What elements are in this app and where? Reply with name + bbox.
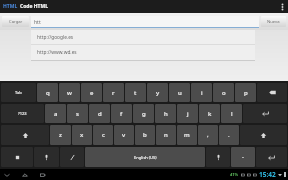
button[interactable]: English (US) [85,147,205,167]
staticText: i [201,89,203,97]
button[interactable]: . [219,125,239,145]
button[interactable]: s [67,104,88,123]
button[interactable]: x [72,125,92,145]
button[interactable]: b [135,125,155,145]
button[interactable]: n [156,125,176,145]
staticText: ?123 [18,111,27,116]
staticText: b [143,131,147,139]
button[interactable]: Backspace [257,83,287,102]
staticText: s [76,110,79,118]
button[interactable]: d [89,104,110,123]
button[interactable]: Shift [1,125,49,145]
button[interactable]: Enter [243,104,287,123]
staticText: n [164,131,168,139]
button[interactable]: Symbols [60,147,84,167]
button[interactable]: u [169,83,190,102]
button[interactable]: Home [20,170,30,180]
staticText: o [222,89,226,97]
button[interactable]: v [114,125,134,145]
button[interactable]: Tab [1,83,36,102]
button[interactable]: t [125,83,146,102]
button[interactable]: a [45,104,66,123]
button[interactable]: Recent apps [38,170,48,180]
button[interactable]: htt [31,16,259,28]
staticText: y [156,89,160,97]
button[interactable]: e [81,83,102,102]
button[interactable]: l [221,104,242,123]
staticText: e [90,89,94,97]
button[interactable]: g [133,104,154,123]
staticText: - [242,153,244,161]
staticText: , [207,131,209,139]
button[interactable]: m [177,125,197,145]
button[interactable]: Back [2,170,12,180]
staticText: v [122,131,126,139]
button[interactable]: q [37,83,58,102]
button[interactable]: r [103,83,124,102]
staticText: . [228,131,230,139]
button[interactable]: c [93,125,113,145]
staticText: c [102,131,105,139]
staticText: HTML [3,3,18,10]
button[interactable]: i [191,83,212,102]
staticText: q [46,89,50,97]
button[interactable]: h [155,104,176,123]
button[interactable]: y [147,83,168,102]
staticText: u [178,89,182,97]
button[interactable]: Next field [256,147,287,167]
staticText: http://www.wd.es [37,49,77,56]
button[interactable]: Voice input [34,147,59,167]
staticText: x [80,131,84,139]
button[interactable]: Voice [206,147,230,167]
button[interactable]: Shift [240,125,287,145]
staticText: j [187,110,189,118]
staticText: f [120,110,123,118]
button[interactable]: - [231,147,255,167]
staticText: l [231,110,233,118]
button[interactable]: p [235,83,256,102]
button[interactable]: o [213,83,234,102]
staticText: z [59,131,62,139]
button[interactable]: http://www.wd.es [31,45,255,59]
staticText: Code HTML [20,3,49,10]
button[interactable]: http://google.es [31,30,255,44]
button[interactable]: Nueva [261,16,286,27]
staticText: Cargar [9,19,23,25]
staticText: d [98,110,102,118]
button[interactable]: , [198,125,218,145]
staticText: Tab [15,90,22,95]
button[interactable]: ?123 [1,104,44,123]
staticText: English (US) [134,155,157,160]
button[interactable]: k [199,104,220,123]
button[interactable]: Keyboard settings [1,147,33,167]
staticText: g [142,110,146,118]
staticText: m [184,131,190,139]
staticText: p [244,89,248,97]
staticText: k [208,110,212,118]
staticText: 15:42 [259,170,276,179]
staticText: 41% [230,172,239,177]
staticText: h [164,110,168,118]
button[interactable]: More options [277,0,288,13]
button[interactable]: Cargar [2,16,29,27]
staticText: t [134,89,137,97]
staticText: r [112,89,115,97]
button[interactable]: j [177,104,198,123]
button[interactable]: f [111,104,132,123]
button[interactable]: z [50,125,71,145]
staticText: http://google.es [37,34,74,41]
staticText: Nueva [267,19,280,25]
staticText: htt [34,19,41,26]
button[interactable]: w [59,83,80,102]
staticText: a [54,110,58,118]
staticText: w [67,89,72,97]
